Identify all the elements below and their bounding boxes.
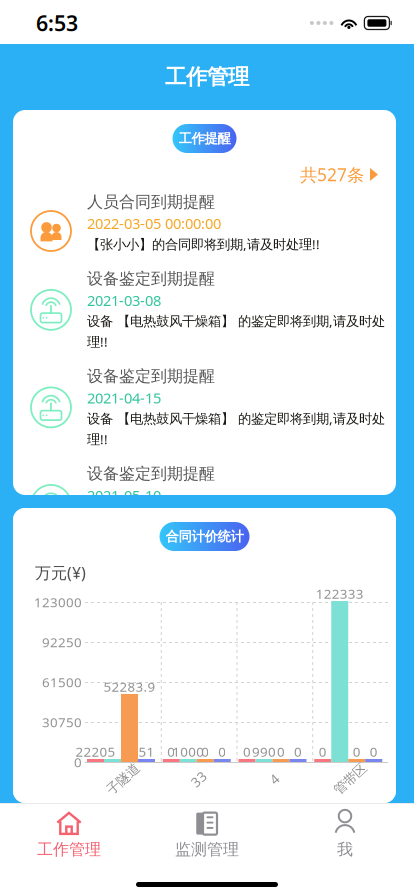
staticText: 工作管理 (37, 840, 101, 859)
staticText: 工作管理 (165, 64, 249, 90)
staticText: 我 (337, 840, 353, 859)
staticText: 万元(¥) (35, 562, 86, 583)
staticText: 2021-04-15 (87, 388, 161, 407)
staticText: 设备鉴定到期提醒 (87, 366, 215, 386)
staticText: 0 (243, 743, 251, 760)
staticText: 52283.9 (103, 678, 155, 695)
staticText: 合同计价统计 (165, 528, 243, 545)
staticText: 0 (319, 743, 327, 760)
button[interactable]: 设备鉴定到期提醒 (13, 464, 396, 545)
staticText: 子隧道 (103, 771, 142, 787)
staticText: 设备 【电热鼓风干燥箱】 的鉴定即将到期,请及时处理!! (87, 409, 385, 448)
button[interactable]: 设备鉴定到期提醒 (13, 366, 396, 448)
staticText: 92250 (42, 633, 82, 651)
button[interactable]: 共527条 (13, 153, 396, 186)
staticText: 61500 (42, 673, 82, 691)
staticText: 33 (191, 770, 207, 788)
staticText: 2022-03-05 00:00:00 (87, 214, 221, 233)
staticText: 共527条 (300, 163, 364, 186)
staticText: 设备鉴定到期提醒 (87, 269, 215, 289)
staticText: 设备鉴定到期提醒 (87, 464, 215, 484)
staticText: 51 (138, 743, 154, 760)
button[interactable]: 监测管理 (138, 804, 276, 859)
staticText: 工作提醒 (178, 130, 230, 147)
staticText: 1000 (172, 743, 204, 760)
staticText: 人员合同到期提醒 (87, 192, 215, 212)
staticText: 123000 (34, 593, 82, 611)
staticText: 0 (294, 743, 302, 760)
button[interactable]: 我 (276, 804, 414, 859)
staticText: 设备 【电热鼓风干燥箱】 的鉴定即将到期,请及时处理!! (87, 507, 385, 545)
staticText: 30750 (42, 713, 82, 731)
staticText: 设备 【电热鼓风干燥箱】 的鉴定即将到期,请及时处理!! (87, 312, 385, 350)
staticText: 22205 (75, 743, 115, 760)
staticText: 2021-03-08 (87, 290, 161, 310)
button[interactable]: 工作管理 (0, 804, 138, 859)
staticText: 0 (277, 743, 285, 760)
staticText: 4 (270, 770, 278, 788)
staticText: 监测管理 (175, 840, 239, 859)
staticText: 管带区 (331, 771, 370, 787)
staticText: 0 (218, 743, 226, 760)
staticText: 2021-05-10 (87, 486, 161, 505)
staticText: 0 (74, 753, 82, 771)
staticText: 0 (353, 743, 361, 760)
staticText: 6:53 (36, 9, 78, 37)
staticText: 0 (370, 743, 378, 760)
staticText: 【张小小】的合同即将到期,请及时处理!! (87, 235, 320, 253)
staticText: 122333 (316, 585, 364, 602)
staticText: 990 (252, 743, 276, 760)
staticText: 0 (201, 743, 209, 760)
button[interactable]: 人员合同到期提醒 (13, 192, 396, 253)
staticText: 0 (167, 743, 175, 760)
button[interactable]: 设备鉴定到期提醒 (13, 269, 396, 350)
